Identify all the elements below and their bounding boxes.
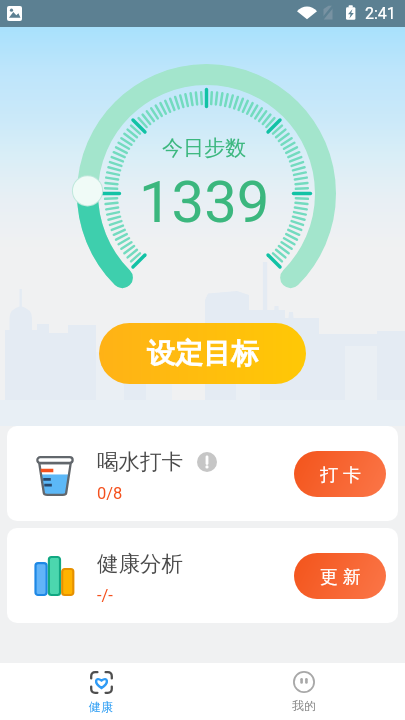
staticText: 更 新 xyxy=(320,564,361,589)
staticText: 健康 xyxy=(89,699,113,714)
staticText: 设定目标 xyxy=(147,336,259,371)
button[interactable]: 健康 xyxy=(0,663,202,720)
button[interactable]: 喝水打卡 xyxy=(7,426,398,521)
button[interactable]: 健康分析 xyxy=(7,528,398,623)
staticText: 今日步数 xyxy=(162,135,246,161)
staticText: 健康分析 xyxy=(97,550,183,577)
other: 我的 xyxy=(293,671,315,693)
staticText: -/- xyxy=(97,586,113,605)
staticText: 1339 xyxy=(139,168,270,236)
button[interactable]: 更 新 xyxy=(294,553,386,599)
staticText: 2:41 xyxy=(365,4,396,23)
button[interactable]: 设定目标 xyxy=(99,323,306,384)
staticText: 0/8 xyxy=(97,484,123,503)
staticText: 喝水打卡 xyxy=(97,448,183,475)
staticText: 我的 xyxy=(292,698,316,713)
other: 健康 xyxy=(90,671,113,694)
button[interactable]: 打 卡 xyxy=(294,451,386,497)
button[interactable]: 我的 xyxy=(202,663,405,720)
staticText: 打 卡 xyxy=(320,462,361,487)
